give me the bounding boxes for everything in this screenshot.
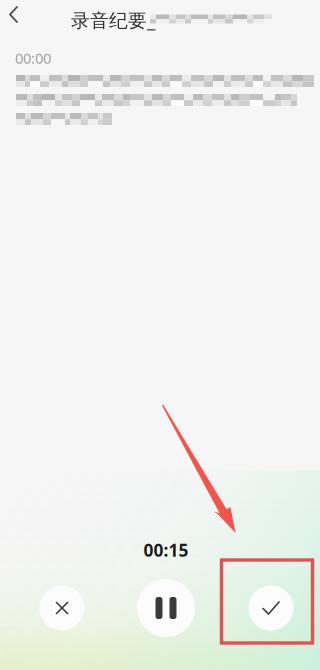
button[interactable]: Back [9,5,39,35]
button[interactable]: Cancel recording [39,585,84,630]
staticText: 00:00 [15,48,51,68]
staticText: 录音纪要_ [71,8,155,32]
button[interactable]: Finish recording [248,585,293,630]
staticText: 00:15 [143,538,188,561]
button[interactable]: Pause recording [137,579,195,637]
